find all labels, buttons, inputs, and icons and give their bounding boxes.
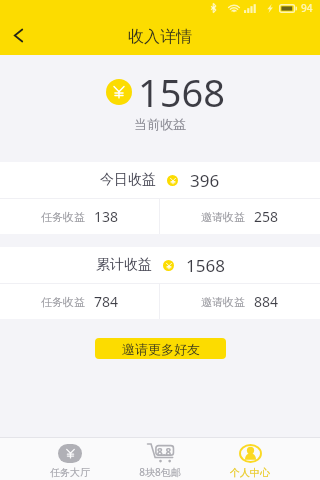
button[interactable]: 8.8 [115,438,205,480]
staticText: 邀请更多好友 [122,341,200,357]
staticText: 1568 [138,66,225,118]
button[interactable]: 邀请收益 [160,199,320,234]
button[interactable]: 邀请收益 [160,284,320,319]
button[interactable]: 任务收益 [0,199,159,234]
staticText: 邀请收益 [201,295,245,309]
staticText: 396 [190,169,220,192]
staticText: 个人中心 [230,466,270,479]
staticText: 8.8 [157,445,172,459]
staticText: 138 [94,207,119,226]
button[interactable]: 任务收益 [0,284,159,319]
staticText: 任务大厅 [50,466,90,479]
staticText: 884 [254,292,279,311]
button[interactable]: 返回 [0,16,36,55]
staticText: 邀请收益 [201,210,245,224]
staticText: 8块8包邮 [139,465,181,479]
button[interactable]: 邀请更多好友 [95,338,226,359]
staticText: 258 [254,207,279,226]
staticText: 94 [301,1,313,15]
staticText: 任务收益 [41,210,85,224]
staticText: 累计收益 [96,256,152,274]
button[interactable]: 个人中心 [205,438,295,480]
staticText: 今日收益 [100,171,156,189]
staticText: 784 [94,292,119,311]
staticText: 1568 [186,254,225,277]
staticText: 当前收益 [134,116,186,132]
staticText: 任务收益 [41,295,85,309]
staticText: 收入详情 [128,27,192,47]
button[interactable]: 任务大厅 [25,438,115,480]
